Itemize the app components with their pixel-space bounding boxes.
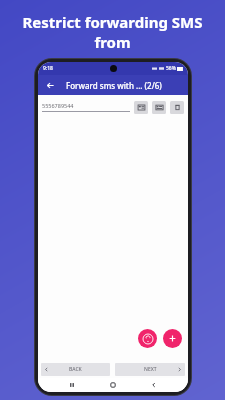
button[interactable]: Contacts [134,101,148,114]
button[interactable]: Delete [170,101,184,114]
staticText: 56% [166,65,176,72]
button[interactable]: Back [43,78,57,92]
staticText: NEXT [144,366,157,373]
button[interactable]: Recents [65,378,79,392]
staticText: 9:18 [43,65,53,72]
button[interactable]: Back [147,378,161,392]
button[interactable]: Home [106,378,120,392]
staticText: only some contacts [40,54,185,74]
staticText: Forward sms with ... (2/6) [66,80,162,91]
staticText: 5556789544 [42,102,74,109]
button[interactable]: Help [138,329,157,348]
button[interactable]: 5556789544 [42,102,134,112]
button[interactable]: NEXT [115,363,185,376]
button[interactable]: BACK [41,363,110,376]
button[interactable]: Add [163,329,182,348]
staticText: BACK [69,366,82,373]
button[interactable]: Groups [152,101,166,114]
staticText: Restrict forwarding SMS from [10,12,215,52]
